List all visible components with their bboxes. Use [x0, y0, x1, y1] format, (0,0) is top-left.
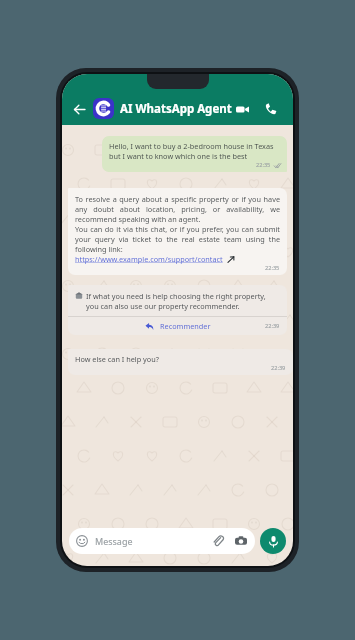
staticText: AI WhatsApp Agent — [120, 101, 232, 117]
staticText: Hello, I want to buy a 2-bedroom house i… — [109, 141, 281, 161]
staticText: 22:35 — [265, 264, 280, 272]
button[interactable]: Voice message — [260, 528, 286, 554]
staticText: To resolve a query about a specific prop… — [75, 194, 280, 224]
button[interactable]: How else can I help you? — [68, 349, 293, 375]
button[interactable]: To resolve a query about a specific prop… — [68, 188, 287, 275]
staticText: 22:39 — [271, 364, 286, 372]
button[interactable]: https://www.example.com/support/contact — [75, 254, 223, 264]
button[interactable]: Attach — [211, 534, 225, 548]
staticText: 22:39 — [265, 322, 280, 330]
button[interactable]: If what you need is help choosing the ri… — [68, 285, 287, 335]
button[interactable]: Hello, I want to buy a 2-bedroom house i… — [102, 136, 287, 172]
staticText: How else can I help you? — [75, 354, 159, 364]
button[interactable]: Call — [261, 99, 281, 119]
button[interactable]: Camera — [234, 534, 248, 548]
button[interactable]: Message — [69, 528, 255, 554]
button[interactable]: Back — [68, 98, 90, 120]
button[interactable]: Recommender — [68, 317, 287, 335]
staticText: If what you need is help choosing the ri… — [86, 291, 280, 311]
staticText: You can do it via this chat, or if you p… — [75, 224, 280, 254]
staticText: Message — [95, 535, 133, 547]
staticText: 22:35 — [256, 161, 271, 169]
staticText: Recommender — [160, 321, 211, 331]
button[interactable]: Video call — [232, 99, 252, 119]
